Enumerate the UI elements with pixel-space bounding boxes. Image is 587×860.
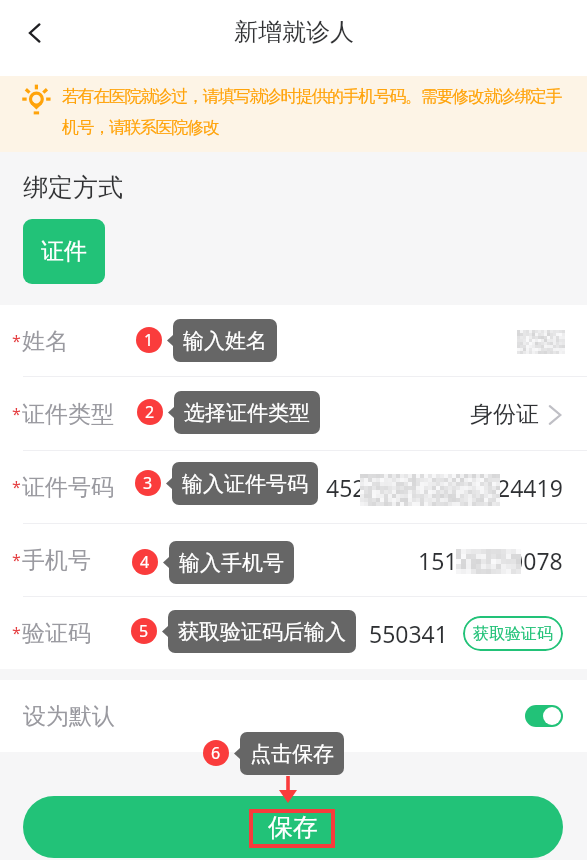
button[interactable]: *	[0, 377, 587, 451]
staticText: 验证码	[22, 619, 91, 648]
staticText: 输入证件号码	[182, 471, 308, 497]
staticText: *	[12, 549, 21, 571]
staticText: 设为默认	[23, 702, 115, 731]
staticText: *	[12, 622, 21, 644]
staticText: 输入手机号	[179, 550, 284, 576]
staticText: 姓名	[22, 327, 68, 356]
staticText: 身份证	[470, 400, 539, 429]
staticText: 证件	[41, 237, 87, 266]
staticText: *	[12, 330, 21, 352]
button[interactable]: 证件	[23, 219, 105, 284]
staticText: 选择证件类型	[184, 400, 310, 426]
staticText: 点击保存	[250, 741, 334, 767]
button[interactable]: 保存	[23, 796, 563, 858]
staticText: 获取验证码后输入	[178, 619, 346, 645]
staticText: *	[12, 476, 21, 498]
staticText: 6	[211, 742, 221, 764]
staticText: 15170000078	[418, 545, 563, 576]
staticText: 保存	[268, 812, 318, 843]
staticText: 若有在医院就诊过，请填写就诊时提供的手机号码。需要修改就诊绑定手机号，请联系医院…	[62, 86, 570, 138]
staticText: 2	[145, 401, 155, 423]
staticText: 证件号码	[22, 473, 114, 502]
button[interactable]: *	[0, 524, 587, 597]
staticText: 新增就诊人	[234, 17, 354, 47]
staticText: *	[12, 403, 21, 425]
button[interactable]: 获取验证码	[463, 616, 563, 651]
staticText: 输入姓名	[183, 328, 267, 354]
staticText: 5	[139, 620, 149, 642]
staticText: 3	[143, 472, 153, 494]
staticText: 绑定方式	[23, 172, 123, 203]
staticText: 550341	[369, 618, 448, 649]
staticText: 452100000000024419	[326, 472, 563, 503]
button[interactable]: *	[0, 597, 587, 669]
staticText: 手机号	[22, 546, 91, 575]
staticText: 4	[140, 551, 150, 573]
button[interactable]: Set as default	[525, 705, 563, 727]
staticText: 证件类型	[22, 400, 114, 429]
button[interactable]: *	[0, 451, 587, 524]
staticText: 1	[144, 329, 154, 351]
button[interactable]: Back	[11, 9, 59, 57]
staticText: 获取验证码	[473, 624, 553, 644]
button[interactable]: *	[0, 305, 587, 377]
